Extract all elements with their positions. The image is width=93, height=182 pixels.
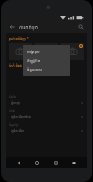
- staticText: ចំនួនកេស: [27, 67, 42, 72]
- staticText: ជ្រើសរើស: [11, 128, 80, 133]
- staticText: ទំហំ ទំងន់ ឬ ចំនួន *: [9, 63, 37, 68]
- staticText: ទីតាំង: [9, 95, 16, 99]
- button[interactable]: Back: [14, 158, 24, 168]
- staticText: ចំនួនថ្ងៃ: [9, 123, 18, 127]
- button[interactable]: ចំនួនកេស: [23, 65, 70, 74]
- staticText: មេត្រគូប: [27, 49, 40, 54]
- staticText: ភ្នំពេញ: [11, 100, 80, 105]
- button[interactable]: Recent apps: [51, 158, 61, 168]
- staticText: គីឡូក្រាម: [27, 58, 41, 63]
- button[interactable]: Screenshot: [69, 158, 79, 168]
- button[interactable]: Add photo: [60, 43, 84, 60]
- button[interactable]: គីឡូក្រាម: [23, 56, 70, 65]
- button[interactable]: Home: [32, 158, 42, 168]
- button[interactable]: Navigate up: [7, 22, 17, 32]
- button[interactable]: ម៉ោង: [9, 109, 84, 123]
- button[interactable]: Add photo: [9, 43, 32, 60]
- button[interactable]: ទីតាំង: [9, 95, 84, 109]
- button[interactable]: ចំនួនថ្ងៃ: [9, 123, 84, 137]
- staticText: ការកក់ទុក: [19, 24, 76, 31]
- staticText: ជ្រើសរើសម៉ោង: [11, 114, 80, 119]
- button[interactable]: Add photo: [34, 43, 58, 60]
- staticText: រូបភាពទំនិញ *: [9, 36, 29, 41]
- button[interactable]: មេត្រគូប: [23, 47, 70, 56]
- staticText: ម៉ោង: [9, 109, 15, 113]
- button[interactable]: Search: [76, 22, 86, 32]
